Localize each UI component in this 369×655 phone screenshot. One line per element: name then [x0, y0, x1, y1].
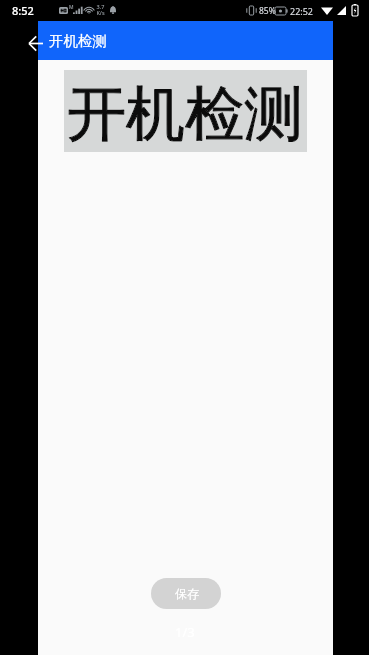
button[interactable]: 保存	[151, 578, 221, 609]
button[interactable]: Back	[25, 31, 49, 55]
staticText: 开机检测	[67, 77, 303, 151]
staticText: 8:52	[12, 3, 34, 18]
staticText: 开机检测	[67, 77, 303, 151]
staticText: 开机检测	[49, 32, 107, 50]
staticText: 22:52	[290, 5, 314, 17]
staticText: M	[69, 4, 74, 11]
staticText: 85%	[259, 5, 276, 17]
staticText: 保存	[175, 586, 199, 601]
staticText: 3.7 K/s	[96, 3, 105, 16]
